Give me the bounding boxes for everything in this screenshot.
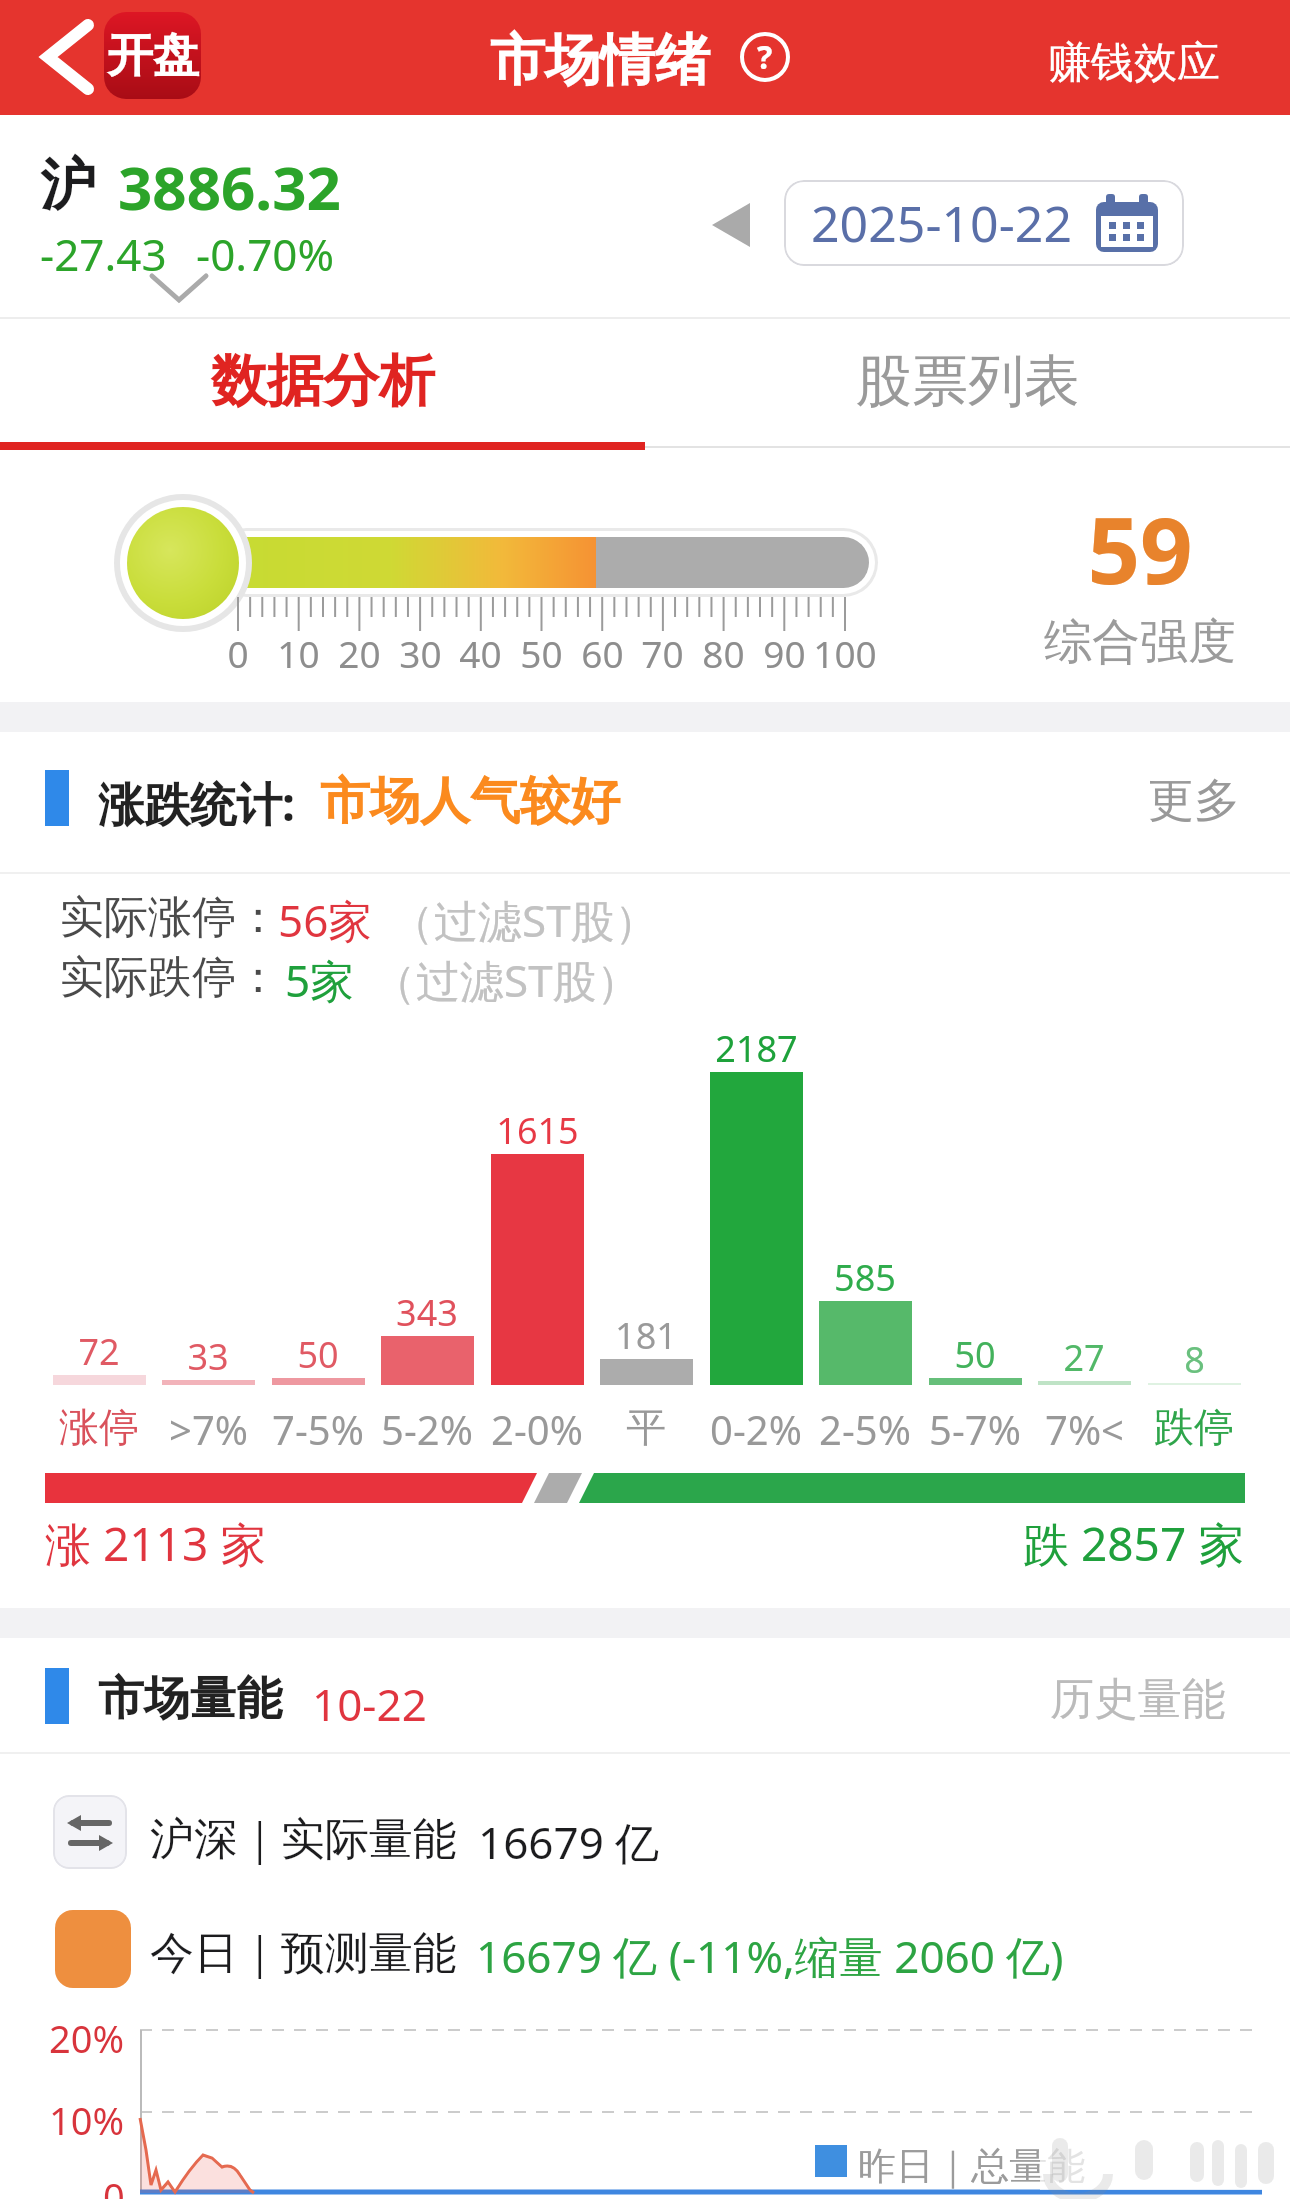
staticText: 市场量能 <box>98 1670 282 1728</box>
staticText: 市场人气较好 <box>320 770 620 833</box>
staticText: 50 <box>520 628 563 678</box>
staticText: 90 <box>763 628 806 678</box>
staticText: 0 <box>227 628 249 678</box>
staticText: 72 <box>78 1327 120 1376</box>
staticText: 更多 <box>1148 772 1240 830</box>
staticText: 20 <box>338 628 381 678</box>
staticText: 沪 <box>40 150 96 221</box>
staticText: 8 <box>1184 1335 1205 1384</box>
staticText: 181 <box>615 1311 677 1360</box>
staticText: 1615 <box>496 1106 579 1155</box>
staticText: 10 <box>277 628 320 678</box>
button[interactable]: 股票列表 <box>645 320 1290 442</box>
staticText: 股票列表 <box>856 346 1080 417</box>
staticText: 开盘 <box>107 27 199 85</box>
staticText: -27.43 <box>40 224 167 284</box>
staticText: 2025-10-22 <box>811 189 1072 257</box>
staticText: 实际跌停： <box>60 950 280 1005</box>
button[interactable] <box>700 195 760 255</box>
staticText: 59 <box>1087 486 1193 611</box>
button[interactable]: ? <box>738 30 792 84</box>
staticText: ? <box>757 35 773 79</box>
staticText: （过滤ST股） <box>390 890 659 950</box>
staticText: （过滤ST股） <box>372 950 641 1010</box>
button[interactable]: 开盘 <box>104 12 201 99</box>
staticText: 实际涨停： <box>60 890 280 945</box>
button[interactable]: 数据分析 <box>0 320 645 442</box>
staticText: 27 <box>1063 1333 1105 1382</box>
staticText: 0-2% <box>710 1402 802 1456</box>
staticText: 赚钱效应 <box>1048 36 1220 90</box>
button[interactable]: 2025-10-22 <box>784 180 1184 266</box>
staticText: 综合强度 <box>1044 612 1236 672</box>
button[interactable] <box>30 15 105 100</box>
staticText: 585 <box>834 1253 896 1302</box>
staticText: >7% <box>169 1402 248 1456</box>
staticText: 70 <box>641 628 684 678</box>
staticText: 涨 2113 家 <box>45 1512 267 1575</box>
staticText: 涨停 <box>59 1402 139 1452</box>
staticText: 昨日｜总量能 <box>858 2142 1086 2190</box>
staticText: 5家 <box>285 950 355 1010</box>
staticText: 0 <box>103 2170 125 2199</box>
staticText: 3886.32 <box>118 146 341 228</box>
staticText: 沪深｜实际量能 <box>150 1812 458 1867</box>
staticText: 数据分析 <box>211 346 435 417</box>
staticText: -0.70% <box>196 224 335 284</box>
staticText: 历史量能 <box>1050 1672 1226 1727</box>
staticText: 跌 2857 家 <box>1023 1512 1245 1575</box>
staticText: 343 <box>396 1288 458 1337</box>
staticText: 2-0% <box>491 1402 583 1456</box>
staticText: 今日｜预测量能 <box>150 1926 458 1981</box>
staticText: 5-2% <box>381 1402 473 1456</box>
staticText: 16679 亿 <box>478 1812 660 1872</box>
staticText: 涨跌统计: <box>98 772 295 835</box>
staticText: 100 <box>813 628 877 678</box>
staticText: 20% <box>49 2012 125 2064</box>
staticText: 2-5% <box>819 1402 911 1456</box>
staticText: 50 <box>954 1330 996 1379</box>
staticText: 80 <box>702 628 745 678</box>
staticText: 10-22 <box>312 1674 427 1734</box>
staticText: 40 <box>459 628 502 678</box>
staticText: 16679 亿 (-11%,缩量 2060 亿) <box>476 1926 1064 1986</box>
staticText: 33 <box>187 1332 229 1381</box>
staticText: 56家 <box>278 890 373 950</box>
staticText: 60 <box>581 628 624 678</box>
staticText: 市场情绪 <box>490 26 710 95</box>
staticText: 平 <box>626 1402 666 1452</box>
staticText: 5-7% <box>929 1402 1021 1456</box>
button[interactable]: 历史量能 <box>1050 1672 1226 1727</box>
staticText: 10% <box>49 2094 125 2146</box>
button[interactable]: 赚钱效应 <box>1048 36 1220 90</box>
staticText: 跌停 <box>1154 1402 1234 1452</box>
staticText: 7%< <box>1045 1402 1124 1456</box>
staticText: 7-5% <box>272 1402 364 1456</box>
staticText: 30 <box>399 628 442 678</box>
staticText: 50 <box>297 1330 339 1379</box>
button[interactable]: 更多 <box>1148 772 1240 830</box>
staticText: 2187 <box>715 1024 798 1073</box>
